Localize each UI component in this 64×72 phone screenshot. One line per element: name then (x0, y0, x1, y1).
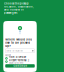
button[interactable]: Continue (5, 64, 35, 68)
staticText: Recent (5, 54, 11, 57)
button[interactable]: Airport Terminal 2 (5, 60, 35, 63)
staticText: Continue (13, 64, 26, 67)
staticText: Enter a location (6, 49, 22, 52)
staticText: Departures level (9, 62, 23, 64)
button[interactable]: Hotel Riverside (5, 57, 35, 60)
staticText: Hotel Riverside (9, 56, 26, 59)
staticText: Where would you like to be picked up? (5, 38, 32, 48)
staticText: 220 Market Street (9, 59, 27, 61)
staticText: Airport Terminal 2 (9, 59, 29, 62)
staticText: Choose the pickup location, destination,… (4, 2, 34, 14)
